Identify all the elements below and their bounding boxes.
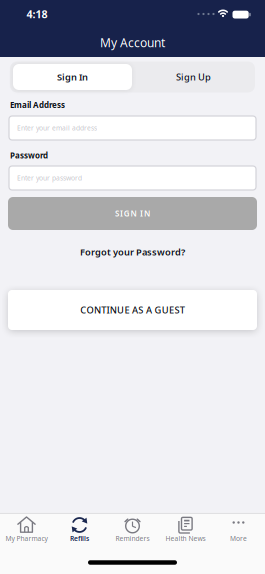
- button[interactable]: Sign Up: [134, 63, 253, 90]
- staticText: More: [230, 534, 247, 543]
- staticText: Enter your password: [17, 173, 82, 182]
- staticText: My Pharmacy: [5, 534, 47, 543]
- staticText: Email Address: [10, 99, 65, 110]
- staticText: Refills: [70, 534, 89, 543]
- staticText: Enter your email address: [17, 123, 97, 132]
- button[interactable]: More: [212, 513, 265, 559]
- button[interactable]: Forgot your Password?: [76, 242, 189, 262]
- staticText: Health News: [165, 534, 205, 543]
- button[interactable]: Health News: [159, 513, 212, 559]
- staticText: Sign Up: [176, 71, 211, 83]
- staticText: 4:18: [26, 7, 47, 21]
- button[interactable]: Reminders: [106, 513, 159, 559]
- staticText: SIGN IN: [115, 208, 150, 219]
- staticText: Reminders: [115, 534, 149, 543]
- staticText: My Account: [100, 34, 165, 50]
- button[interactable]: My Pharmacy: [0, 513, 53, 559]
- staticText: Sign In: [57, 71, 88, 83]
- button[interactable]: Sign In: [13, 64, 132, 90]
- staticText: Password: [10, 150, 48, 161]
- staticText: CONTINUE AS A GUEST: [80, 304, 185, 316]
- button[interactable]: CONTINUE AS A GUEST: [8, 290, 257, 330]
- button[interactable]: SIGN IN: [8, 197, 257, 230]
- staticText: Forgot your Password?: [80, 246, 185, 258]
- button[interactable]: Refills: [53, 513, 106, 559]
